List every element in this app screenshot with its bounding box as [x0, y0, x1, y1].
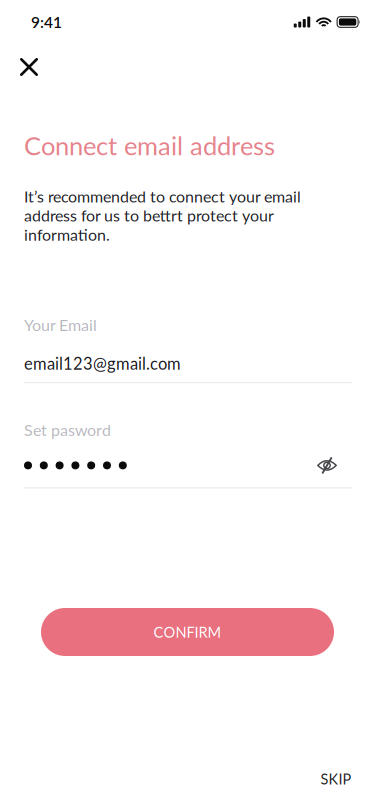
- button[interactable]: CONFIRM: [41, 608, 334, 656]
- staticText: CONFIRM: [153, 623, 221, 641]
- staticText: Your Email: [24, 315, 97, 334]
- staticText: 9:41: [31, 13, 62, 31]
- button[interactable]: Close: [6, 44, 52, 90]
- staticText: SKIP: [320, 770, 351, 788]
- staticText: email123@gmail.com: [24, 353, 181, 373]
- button[interactable]: Show password: [312, 452, 342, 478]
- staticText: Set pasword: [24, 420, 111, 439]
- staticText: Connect email address: [24, 130, 275, 161]
- staticText: It’s recommended to connect your email a…: [24, 187, 301, 244]
- button[interactable]: SKIP: [309, 764, 363, 794]
